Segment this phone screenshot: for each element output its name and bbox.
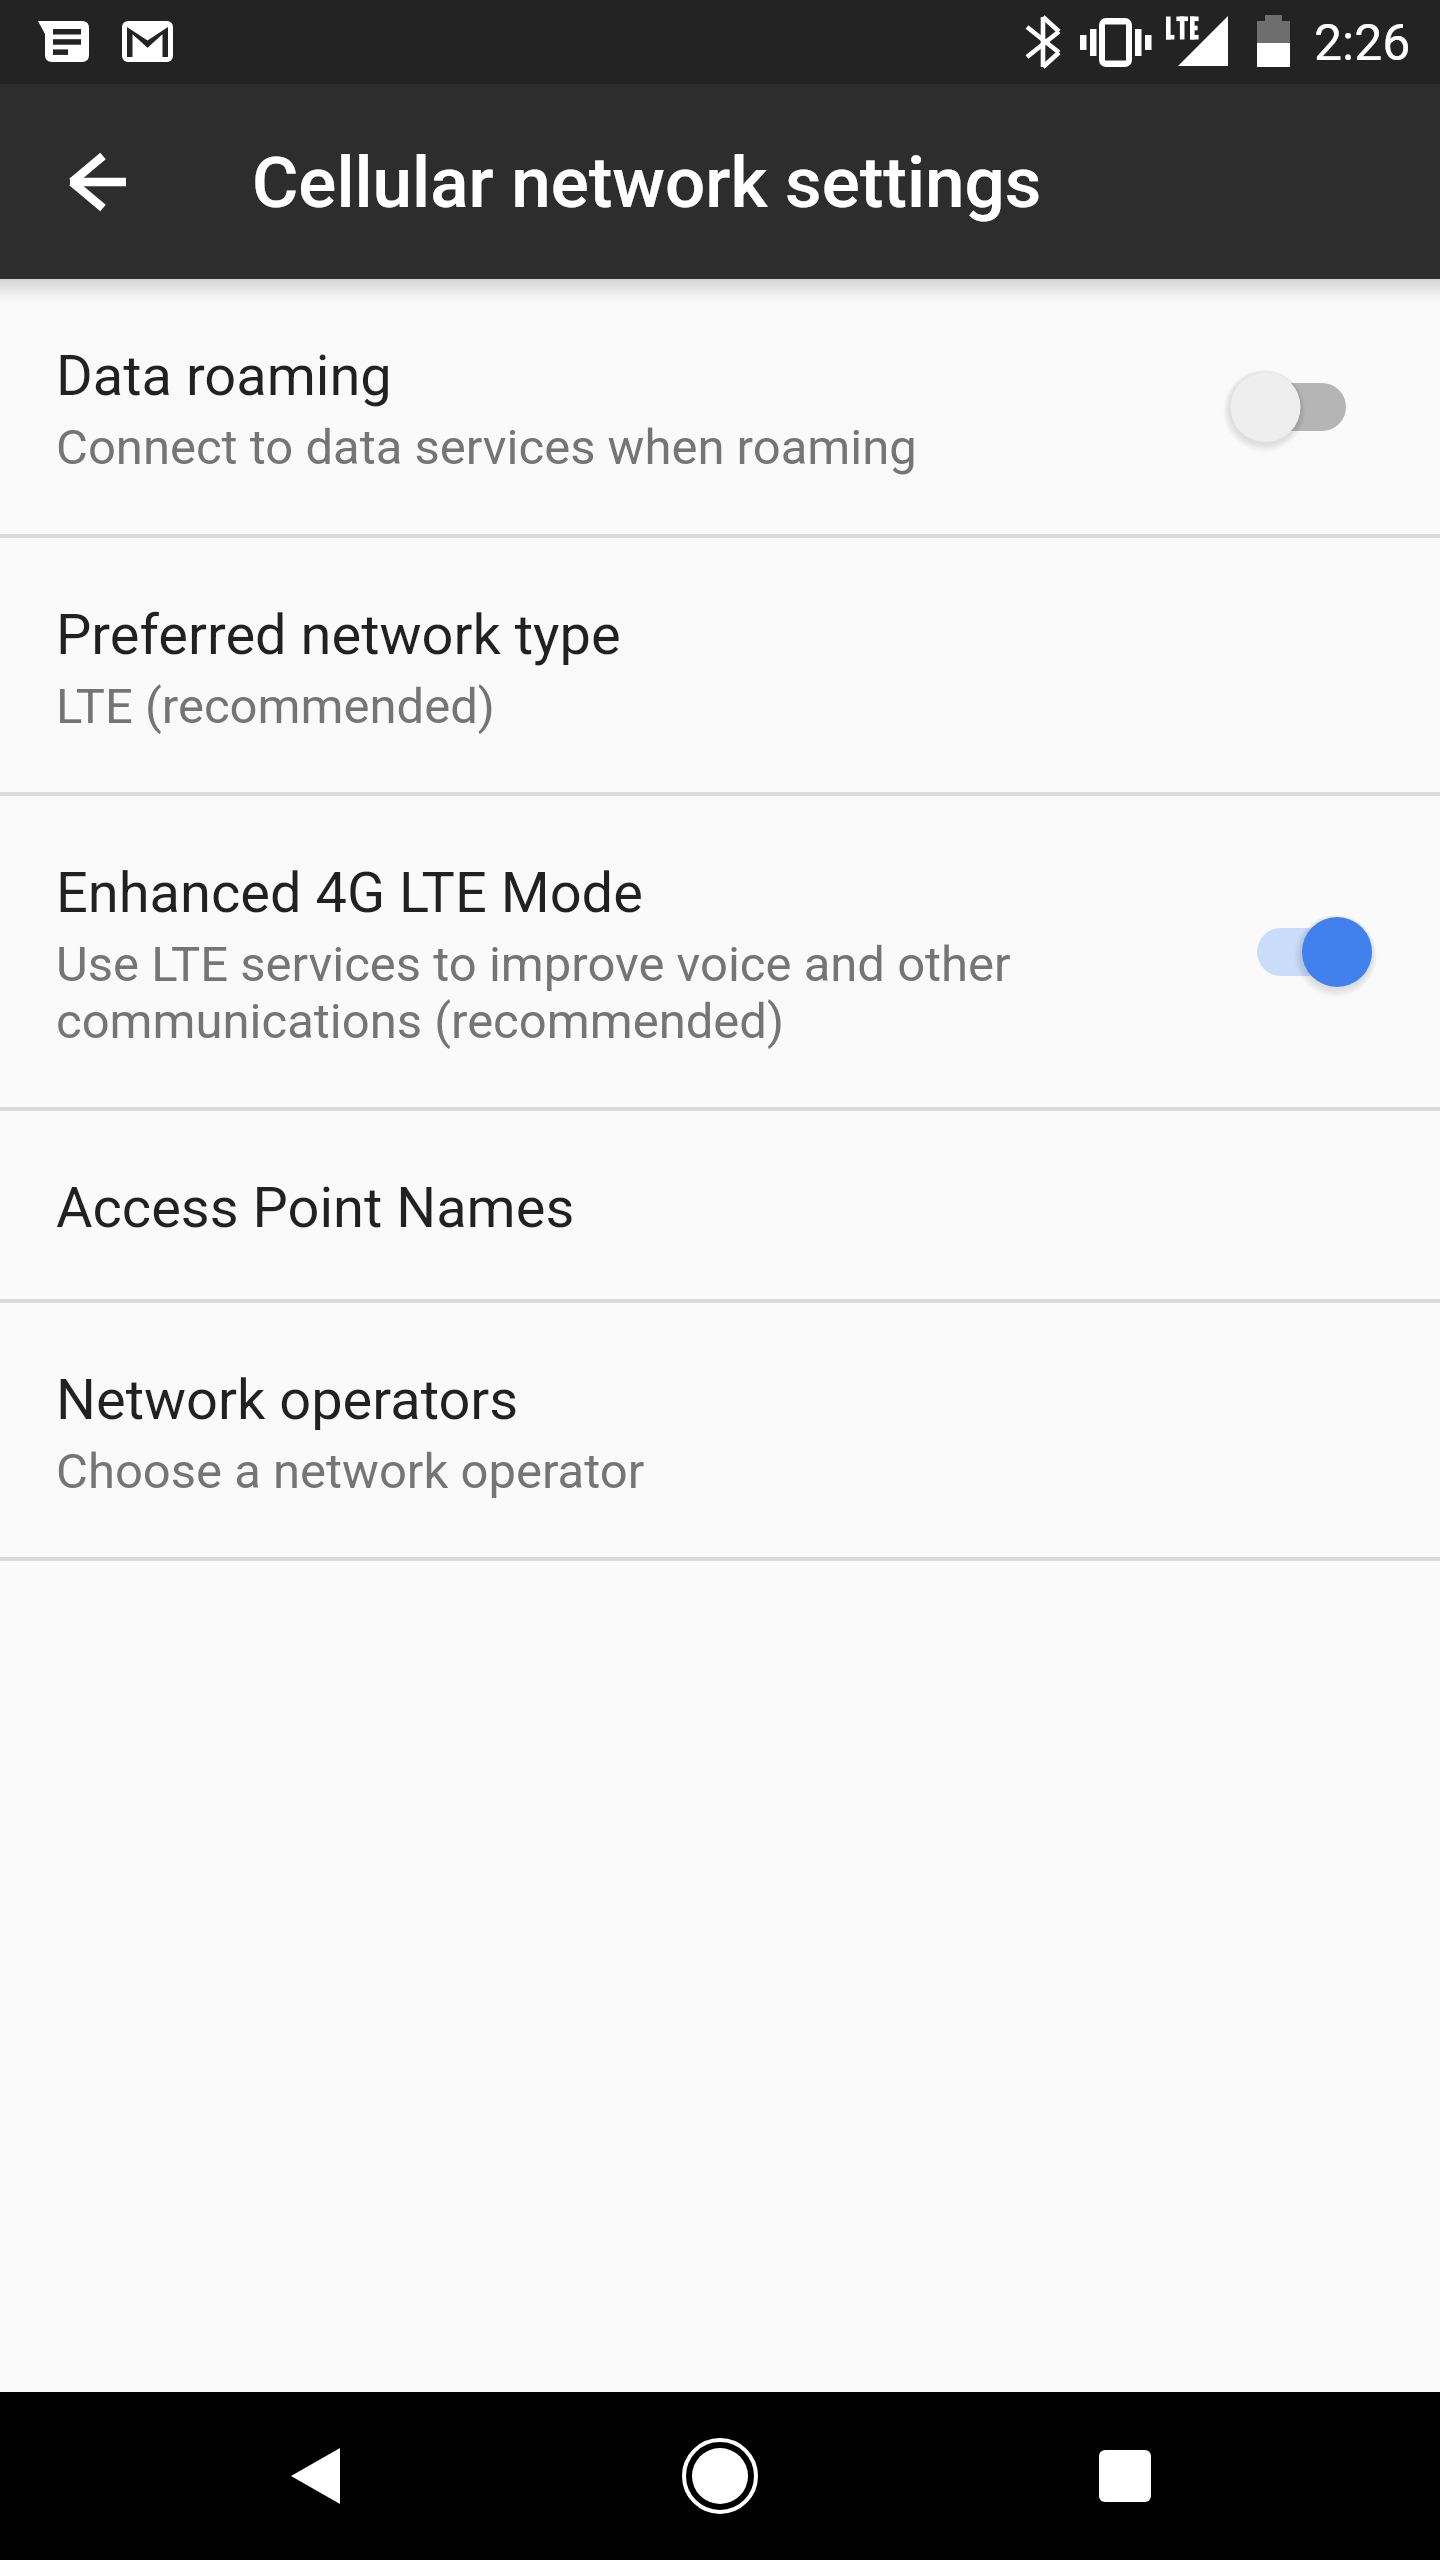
staticText: Network operators (56, 1367, 519, 1433)
button[interactable]: Back (43, 127, 153, 237)
staticText: Access Point Names (56, 1175, 575, 1241)
staticText: LTE (recommended) (56, 678, 495, 735)
button[interactable]: Back (240, 2401, 390, 2551)
button[interactable]: Recent apps (1050, 2401, 1200, 2551)
staticText: Preferred network type (56, 602, 621, 668)
staticText: Data roaming (56, 343, 392, 409)
staticText: Connect to data services when roaming (56, 419, 917, 476)
button[interactable]: Network operators (0, 1303, 1440, 1557)
staticText: Choose a network operator (56, 1443, 645, 1500)
staticText: Cellular network settings (252, 141, 1042, 224)
staticText: Use LTE services to improve voice and ot… (56, 936, 1035, 1050)
button[interactable]: Enhanced 4G LTE Mode (0, 796, 1440, 1107)
button[interactable]: Home (645, 2401, 795, 2551)
button[interactable]: Preferred network type (0, 538, 1440, 792)
staticText: Enhanced 4G LTE Mode (56, 860, 643, 926)
button[interactable]: Data roaming (0, 279, 1440, 534)
staticText: 2:26 (1314, 14, 1411, 73)
button[interactable]: Access Point Names (0, 1111, 1440, 1299)
